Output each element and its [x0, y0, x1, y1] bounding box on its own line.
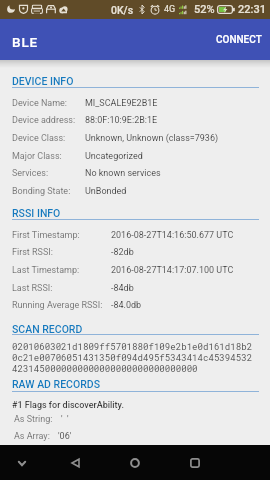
staticText: '06' — [58, 431, 72, 442]
staticText: 52% — [194, 3, 215, 16]
staticText: CONNECT — [216, 34, 262, 46]
staticText: BLE — [12, 34, 39, 50]
button[interactable]: CONNECT — [208, 24, 270, 56]
staticText: Bonding State: — [12, 186, 71, 197]
button[interactable]: Home — [118, 446, 152, 480]
staticText: 4G — [164, 4, 176, 15]
staticText: ' ' — [61, 414, 69, 425]
button[interactable]: Back — [58, 446, 92, 480]
staticText: -82db — [111, 247, 134, 258]
staticText: #1 Flags for discoverAbility. — [12, 400, 124, 411]
staticText: SCAN RECORD — [12, 323, 83, 335]
staticText: Last Timestamp: — [12, 265, 80, 276]
staticText: 22:31 — [238, 3, 266, 16]
staticText: DEVICE INFO — [12, 75, 74, 87]
staticText: 88:0F:10:9E:2B:1E — [85, 115, 158, 126]
staticText: 0K/s — [111, 4, 134, 16]
staticText: Unknown, Unknown (class=7936) — [85, 133, 219, 144]
staticText: As String: — [14, 414, 53, 425]
staticText: Services: — [12, 168, 49, 179]
button[interactable]: Recent apps — [178, 446, 212, 480]
staticText: Uncategorized — [85, 151, 143, 162]
staticText: RSSI INFO — [12, 207, 61, 219]
staticText: 2016-08-27T14:17:07.100 UTC — [111, 265, 234, 276]
staticText: 2016-08-27T14:16:50.677 UTC — [111, 230, 234, 241]
staticText: RAW AD RECORDS — [12, 378, 101, 390]
staticText: Running Average RSSI: — [12, 300, 103, 311]
staticText: First Timestamp: — [12, 230, 80, 241]
staticText: Last RSSI: — [12, 283, 53, 294]
staticText: -84.0db — [111, 300, 142, 311]
staticText: First RSSI: — [12, 247, 53, 258]
staticText: Device address: — [12, 115, 76, 126]
staticText: As Array: — [14, 431, 50, 442]
staticText: MI_SCALE9E2B1E — [85, 98, 158, 109]
button[interactable]: Hide keyboard — [10, 451, 34, 475]
staticText: Major Class: — [12, 151, 62, 162]
staticText: Device Class: — [12, 133, 66, 144]
staticText: 02010603021d1809ff5701880f109e2b1e0d161d… — [12, 340, 253, 374]
staticText: Device Name: — [12, 98, 68, 109]
staticText: No known services — [85, 168, 161, 179]
staticText: -84db — [111, 283, 134, 294]
staticText: UnBonded — [85, 186, 127, 197]
